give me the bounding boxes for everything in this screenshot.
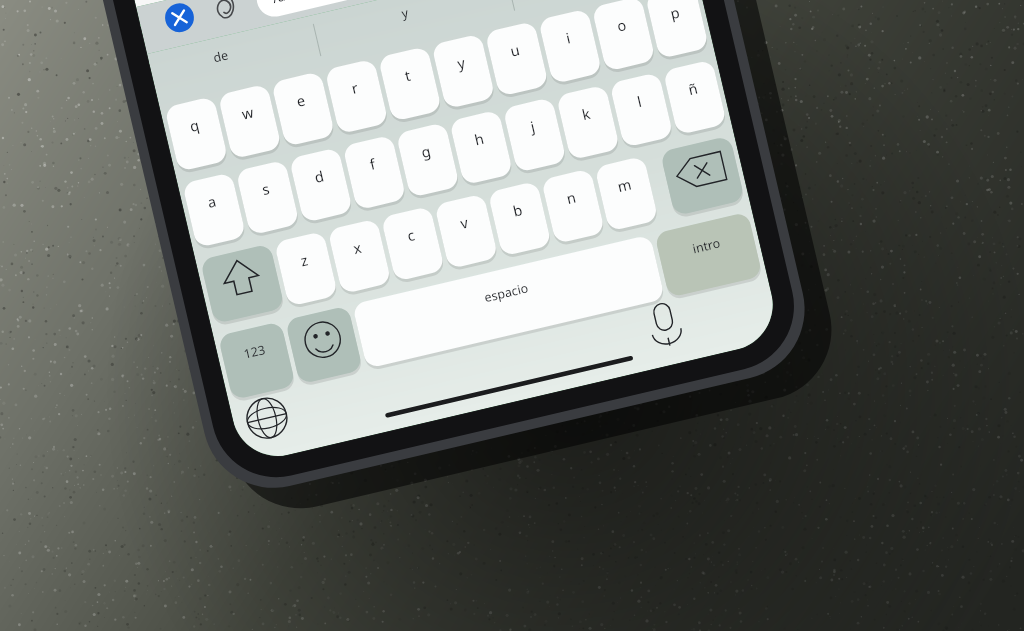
button[interactable]: WhatsApp chat on phone (0, 0, 1024, 631)
other: WhatsApp chat on phone (0, 0, 1024, 631)
